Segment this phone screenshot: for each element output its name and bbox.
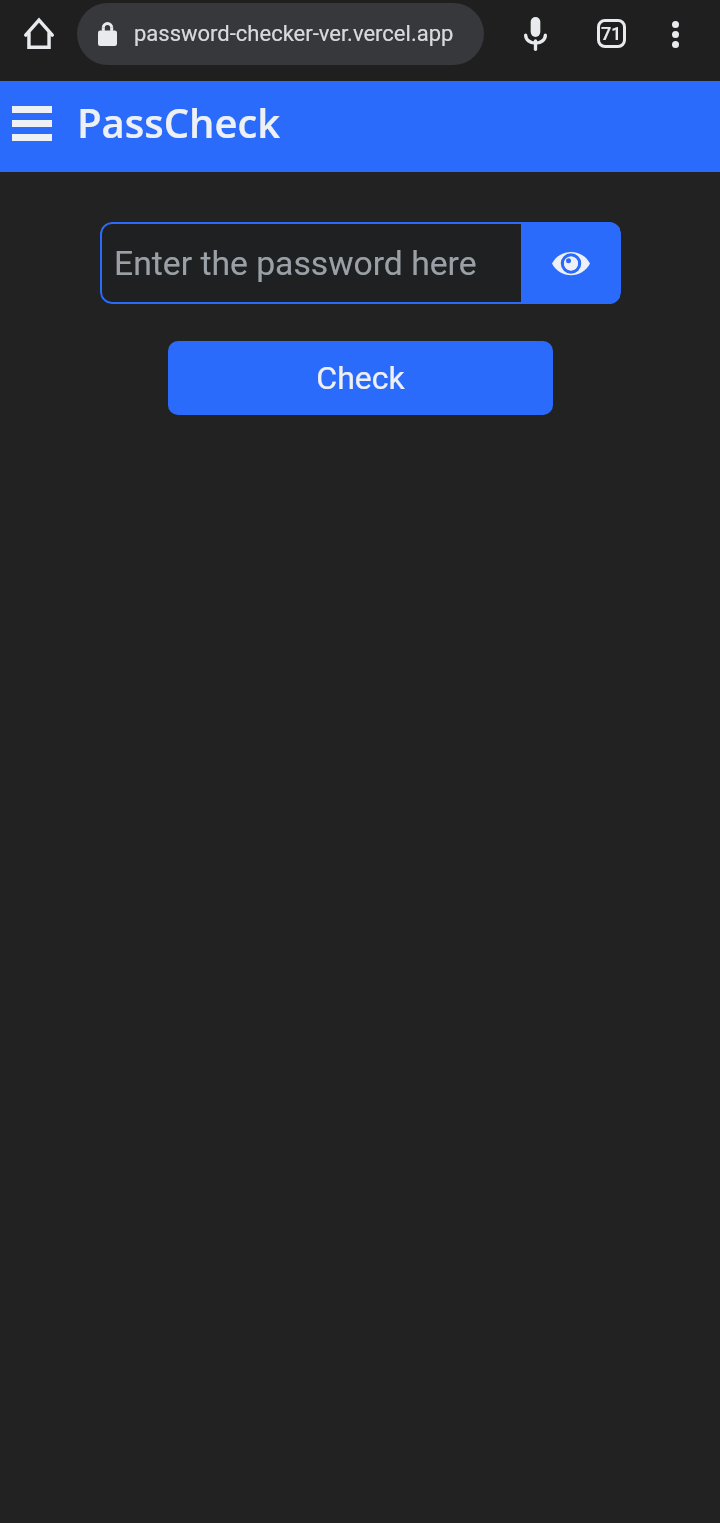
button[interactable]: Show password xyxy=(521,222,620,304)
button[interactable]: Voice search xyxy=(510,9,560,59)
button[interactable]: Tabs xyxy=(586,8,636,58)
button[interactable]: Check xyxy=(168,341,553,415)
staticText: Check xyxy=(316,359,405,397)
button[interactable]: Home xyxy=(16,11,62,57)
button[interactable]: password-checker-ver.vercel.app xyxy=(77,3,484,65)
button[interactable]: Menu xyxy=(12,106,52,141)
staticText: Enter the password here xyxy=(114,244,477,283)
staticText: PassCheck xyxy=(77,95,281,149)
staticText: password-checker-ver.vercel.app xyxy=(134,21,454,47)
button[interactable]: Enter the password here xyxy=(100,222,521,304)
staticText: 71 xyxy=(601,23,622,44)
button[interactable]: More options xyxy=(650,9,700,59)
